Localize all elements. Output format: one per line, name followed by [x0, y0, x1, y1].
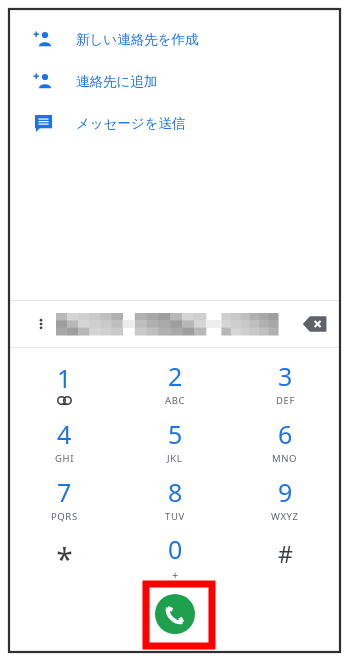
staticText: 連絡先に追加 [76, 73, 158, 90]
staticText: PQRS [51, 510, 78, 523]
staticText: DEF [276, 394, 295, 407]
button[interactable]: 3 [230, 354, 340, 412]
staticText: * [56, 538, 73, 568]
staticText: + [172, 567, 179, 582]
button[interactable]: 連絡先に追加 [9, 60, 340, 102]
staticText: 新しい連絡先を作成 [76, 31, 199, 48]
staticText: 0 [168, 532, 183, 566]
staticText: 4 [57, 417, 72, 451]
staticText: 8 [168, 475, 183, 509]
staticText: GHI [55, 452, 74, 465]
staticText: ABC [165, 394, 186, 407]
staticText: TUV [165, 510, 185, 523]
staticText: MNO [272, 452, 298, 465]
button[interactable]: 8 [120, 470, 230, 528]
button[interactable]: 6 [230, 412, 340, 470]
staticText: メッセージを送信 [76, 115, 186, 132]
button[interactable]: # [230, 528, 340, 586]
button[interactable]: Backspace [298, 307, 332, 341]
button[interactable]: 9 [230, 470, 340, 528]
staticText: # [278, 538, 293, 568]
staticText: 6 [278, 417, 293, 451]
button[interactable]: 1 [9, 354, 120, 412]
button[interactable]: Call [155, 594, 195, 634]
button[interactable]: More options [25, 308, 57, 340]
staticText: 7 [57, 475, 72, 509]
button[interactable]: 0 [120, 528, 230, 586]
button[interactable]: 5 [120, 412, 230, 470]
staticText: 1 [57, 361, 72, 395]
button[interactable]: 4 [9, 412, 120, 470]
staticText: JKL [167, 452, 183, 465]
staticText: WXYZ [271, 510, 299, 523]
staticText: 9 [278, 475, 293, 509]
button[interactable]: メッセージを送信 [9, 102, 340, 144]
staticText: 5 [168, 417, 183, 451]
staticText: 2 [168, 359, 183, 393]
staticText: 3 [278, 359, 293, 393]
button[interactable]: 7 [9, 470, 120, 528]
button[interactable]: 新しい連絡先を作成 [9, 18, 340, 60]
button[interactable]: * [9, 528, 120, 586]
button[interactable]: 2 [120, 354, 230, 412]
